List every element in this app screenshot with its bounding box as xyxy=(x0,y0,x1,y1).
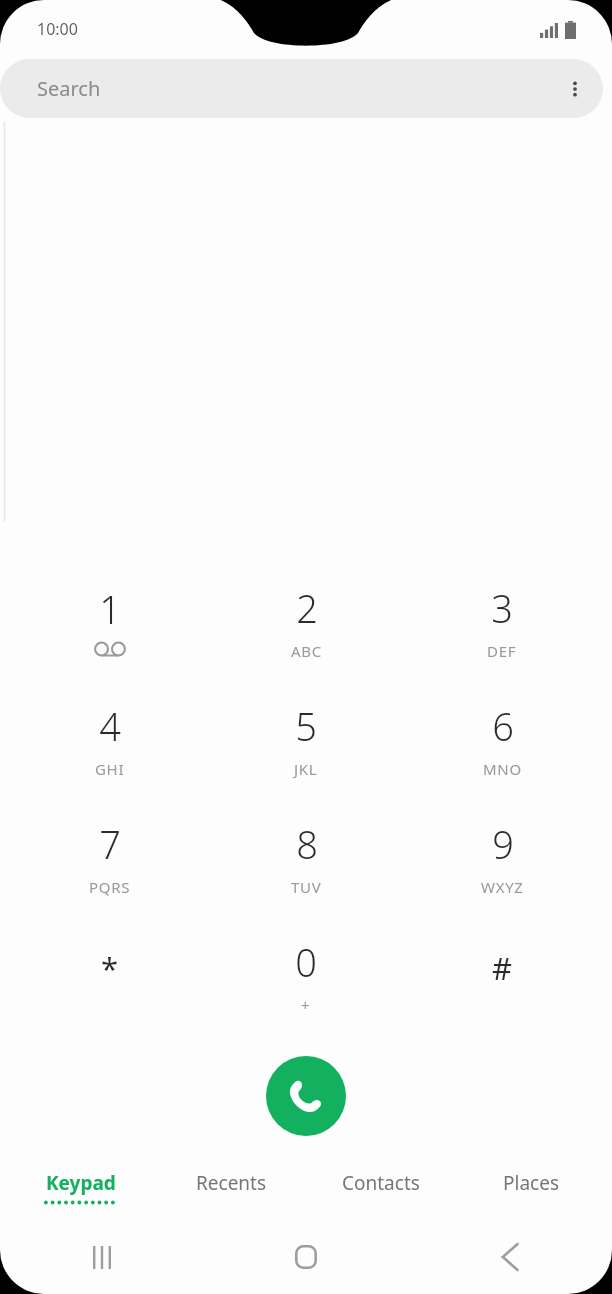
button[interactable]: 2 xyxy=(208,566,404,684)
button[interactable]: # xyxy=(404,920,600,1038)
staticText: 3 xyxy=(491,582,513,634)
staticText: + xyxy=(301,995,311,1015)
button[interactable]: 9 xyxy=(404,802,600,920)
staticText: 10:00 xyxy=(37,18,78,40)
button[interactable]: Keypad xyxy=(6,1154,156,1220)
button[interactable]: 0 xyxy=(208,920,404,1038)
staticText: Recents xyxy=(196,1170,267,1196)
staticText: # xyxy=(492,947,513,989)
button[interactable]: Search xyxy=(0,59,603,118)
staticText: WXYZ xyxy=(481,877,524,897)
button[interactable]: 5 xyxy=(208,684,404,802)
button[interactable]: * xyxy=(12,920,208,1038)
button[interactable]: Contacts xyxy=(306,1154,456,1220)
button[interactable]: 1 xyxy=(12,566,208,684)
staticText: Keypad xyxy=(46,1170,116,1196)
staticText: 2 xyxy=(296,582,318,634)
staticText: DEF xyxy=(487,641,517,661)
button[interactable]: 6 xyxy=(404,684,600,802)
button[interactable]: Home xyxy=(204,1220,408,1294)
staticText: TUV xyxy=(291,877,322,897)
button[interactable]: Call xyxy=(266,1056,346,1136)
staticText: 5 xyxy=(295,700,317,752)
staticText: ABC xyxy=(291,641,322,661)
button[interactable]: More options xyxy=(547,61,603,117)
button[interactable]: Recents xyxy=(156,1154,306,1220)
staticText: GHI xyxy=(95,759,125,779)
staticText: Contacts xyxy=(342,1170,420,1196)
staticText: PQRS xyxy=(89,877,131,897)
button[interactable]: Places xyxy=(456,1154,606,1220)
staticText: 8 xyxy=(296,818,318,870)
staticText: Places xyxy=(503,1170,559,1196)
staticText: 0 xyxy=(295,936,317,988)
staticText: 7 xyxy=(99,818,121,870)
staticText: * xyxy=(101,947,119,989)
staticText: 9 xyxy=(492,818,514,870)
staticText: Search xyxy=(37,75,101,102)
staticText: 1 xyxy=(99,583,121,635)
button[interactable]: 7 xyxy=(12,802,208,920)
button[interactable]: 4 xyxy=(12,684,208,802)
button[interactable]: 8 xyxy=(208,802,404,920)
staticText: MNO xyxy=(483,759,522,779)
staticText: 4 xyxy=(99,700,121,752)
button[interactable]: Back xyxy=(408,1220,612,1294)
staticText: JKL xyxy=(294,759,318,779)
button[interactable]: Recent apps xyxy=(0,1220,204,1294)
button[interactable]: 3 xyxy=(404,566,600,684)
staticText: 6 xyxy=(492,700,514,752)
